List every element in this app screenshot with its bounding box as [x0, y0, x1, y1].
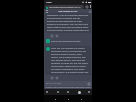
staticText: Can you tell me which forums?	[51, 40, 81, 43]
button[interactable]: Tabs	[85, 5, 89, 9]
staticText: 10:47	[46, 1, 52, 4]
staticText: Intelligence. They are advanced algorith…	[47, 14, 89, 32]
staticText: Edit Chatgpt or Colt	[44, 10, 92, 13]
button[interactable]: Home	[66, 90, 70, 94]
button[interactable]: Share	[55, 76, 58, 79]
button[interactable]: Tabs	[77, 90, 81, 94]
staticText: AGM: The AGM monitors all French discuss…	[51, 47, 89, 74]
button[interactable]: Home	[66, 97, 70, 101]
button[interactable]: Share	[55, 34, 58, 37]
button[interactable]: Back	[45, 90, 49, 94]
button[interactable]: AGM: The AGM monitors all French discuss…	[45, 46, 91, 75]
button[interactable]: chat.openai.com/c/73fcab42-3f71-4	[45, 5, 84, 9]
button[interactable]: Back	[53, 97, 57, 101]
staticText: chat.openai.com/c/73fcab42-3f71-4	[49, 6, 81, 9]
button[interactable]: Menu	[45, 10, 48, 13]
button[interactable]: Forward	[56, 90, 60, 94]
button[interactable]: Recents	[79, 97, 83, 101]
staticText: Send a message	[46, 82, 88, 85]
button[interactable]: Copy	[50, 34, 53, 37]
button[interactable]: New chat	[88, 10, 91, 13]
button[interactable]: Copy	[50, 76, 53, 79]
button[interactable]: Menu	[87, 90, 91, 94]
staticText: ChatGPT may produce inaccurate informati…	[44, 86, 92, 89]
button[interactable]: Send a message	[45, 81, 91, 86]
button[interactable]: More options	[89, 5, 92, 8]
button[interactable]: Intelligence. They are advanced algorith…	[45, 13, 91, 33]
